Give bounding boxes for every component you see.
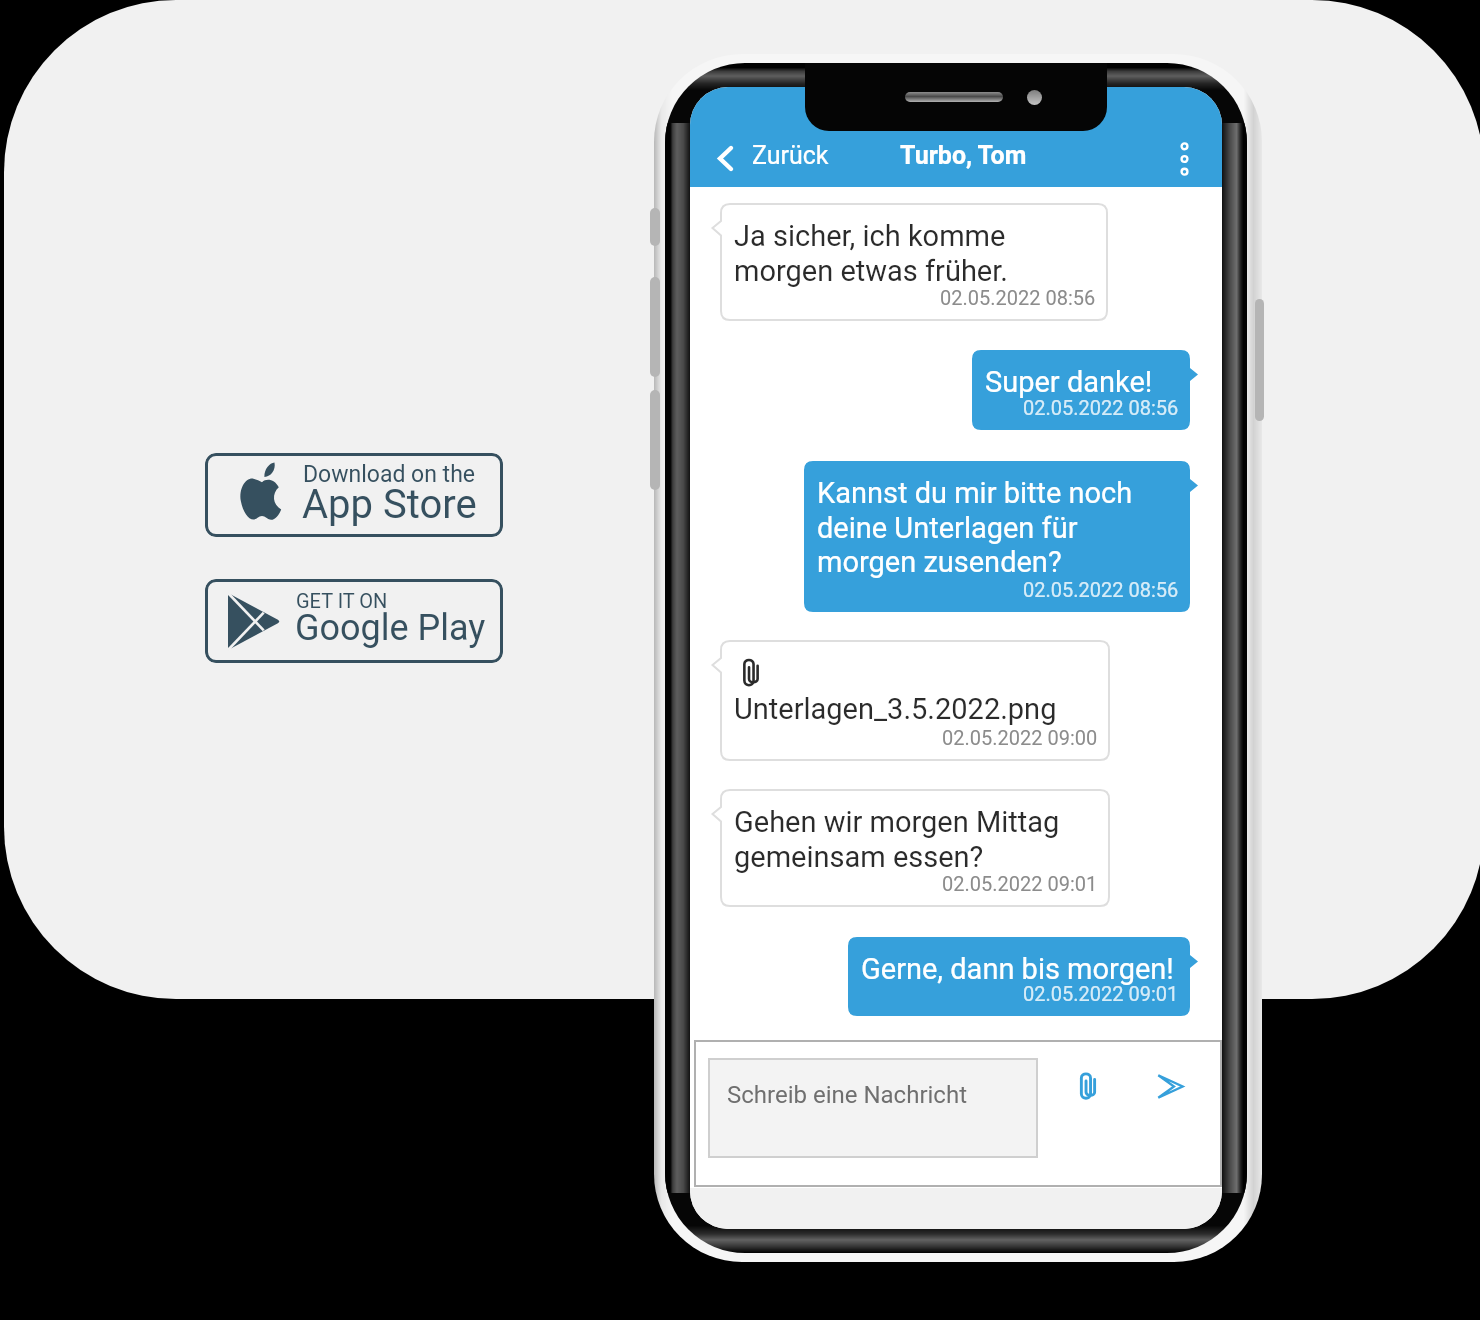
staticText: Turbo, Tom	[900, 141, 1027, 170]
staticText: Kannst du mir bitte noch	[817, 476, 1133, 510]
button[interactable]: Get it on Google Play	[205, 579, 503, 663]
staticText: gemeinsam essen?	[734, 840, 984, 874]
staticText: Unterlagen_3.5.2022.png	[734, 692, 1057, 726]
staticText: Gehen wir morgen Mittag	[734, 805, 1060, 839]
button[interactable]: Ja sicher, ich komme	[721, 204, 1107, 320]
staticText: Google Play	[295, 607, 486, 649]
staticText: 02.05.2022 08:56	[940, 286, 1096, 309]
button[interactable]: Zurück	[713, 135, 847, 187]
button[interactable]: Attach file	[1057, 1050, 1119, 1120]
staticText: GET IT ON	[296, 589, 388, 612]
button[interactable]: Download on the App Store	[205, 453, 503, 537]
button[interactable]: Super danke!	[972, 350, 1190, 430]
staticText: Zurück	[752, 141, 829, 170]
button[interactable]: Kannst du mir bitte noch	[804, 461, 1190, 612]
staticText: 02.05.2022 09:00	[942, 726, 1098, 749]
staticText: 02.05.2022 09:01	[1023, 982, 1179, 1005]
button[interactable]: Gehen wir morgen Mittag	[721, 790, 1109, 906]
staticText: Gerne, dann bis morgen!	[861, 952, 1174, 986]
button[interactable]: Unterlagen_3.5.2022.png	[721, 641, 1109, 760]
staticText: morgen etwas früher.	[734, 254, 1008, 288]
button[interactable]: More options	[1162, 129, 1206, 185]
staticText: deine Unterlagen für	[817, 511, 1078, 545]
staticText: 02.05.2022 09:01	[942, 872, 1098, 895]
staticText: 02.05.2022 08:56	[1023, 396, 1179, 419]
staticText: Ja sicher, ich komme	[734, 219, 1006, 253]
button[interactable]: Send message	[1139, 1051, 1201, 1121]
staticText: Download on the	[303, 461, 476, 488]
button[interactable]: Gerne, dann bis morgen!	[848, 937, 1190, 1016]
staticText: App Store	[302, 481, 477, 528]
staticText: morgen zusenden?	[817, 545, 1062, 579]
button[interactable]: Schreib eine Nachricht	[708, 1058, 1038, 1158]
staticText: Schreib eine Nachricht	[727, 1081, 967, 1109]
staticText: 02.05.2022 08:56	[1023, 578, 1179, 601]
staticText: Super danke!	[985, 365, 1153, 399]
